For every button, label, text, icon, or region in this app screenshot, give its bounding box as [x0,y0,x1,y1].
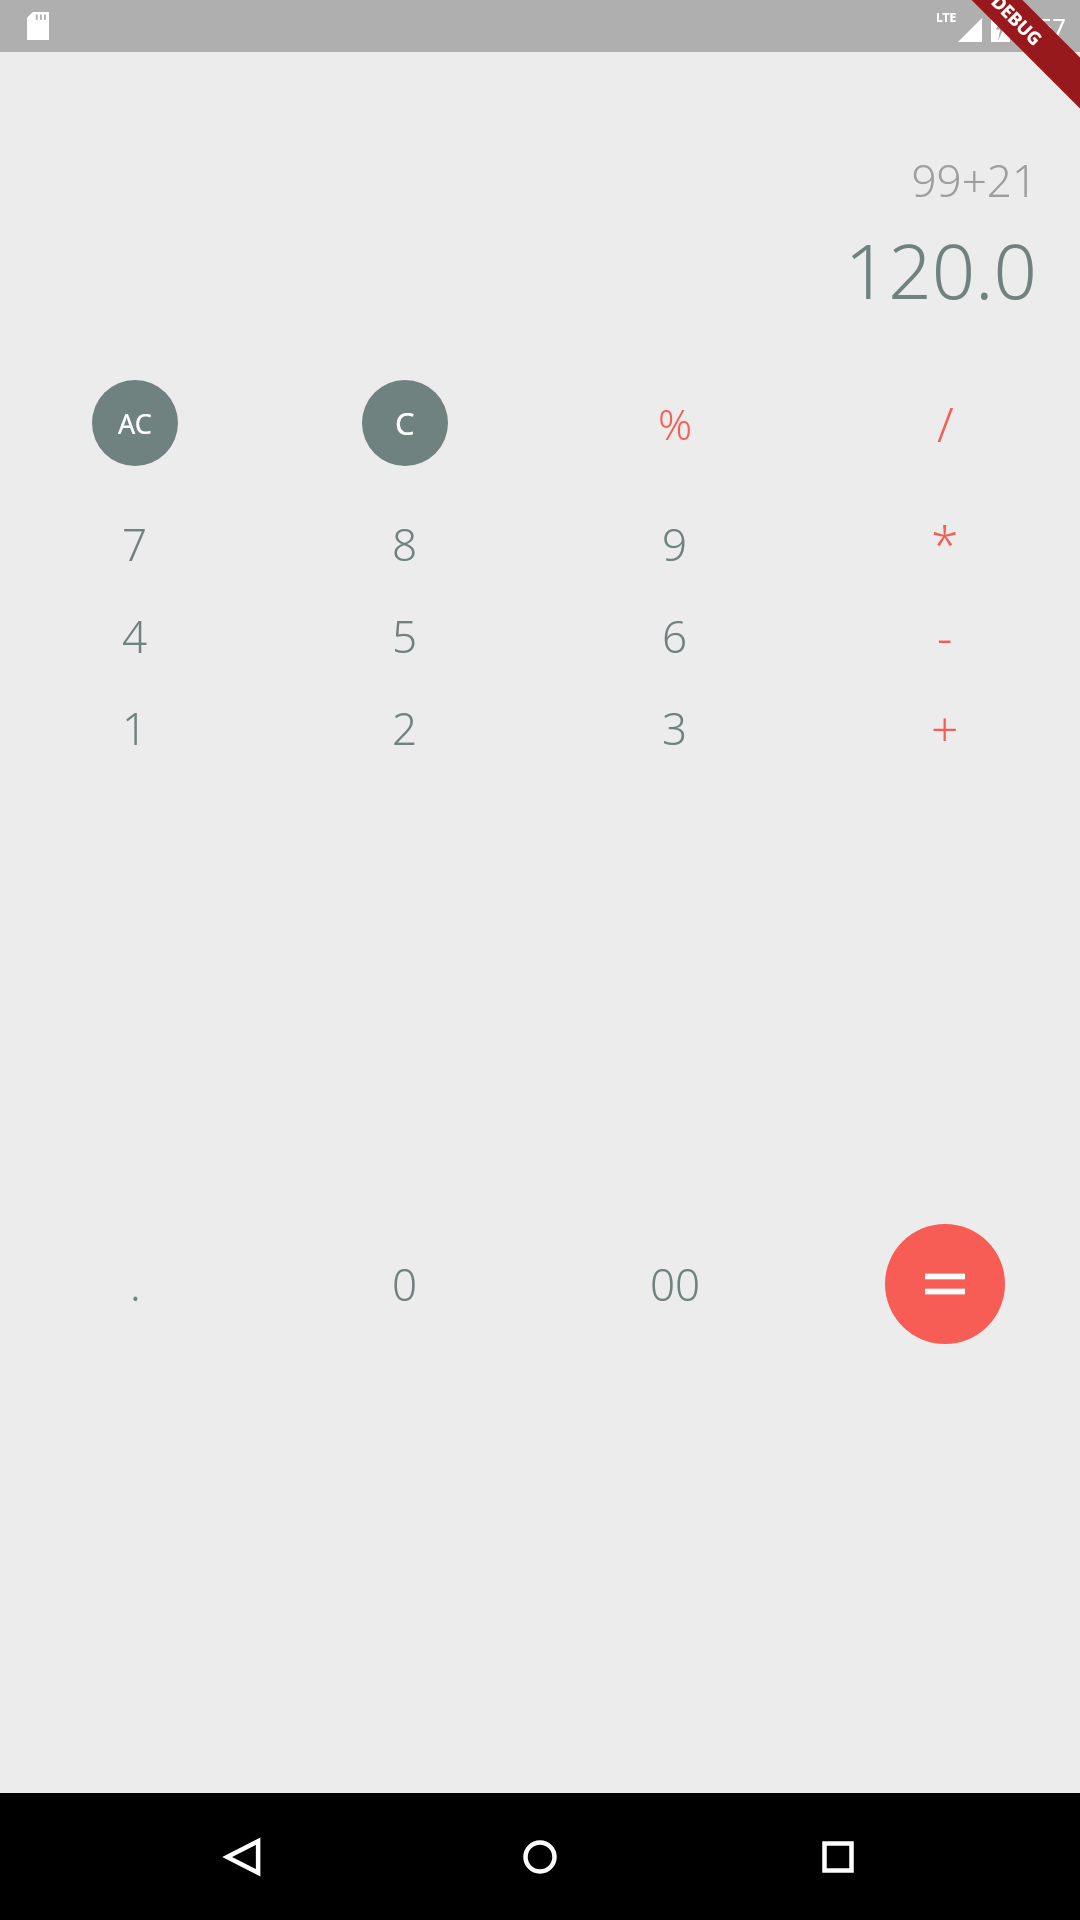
button[interactable]: 9 [615,498,735,590]
button[interactable]: * [885,498,1005,590]
button[interactable]: 00 [615,1238,735,1330]
button[interactable]: 6 [615,590,735,682]
button[interactable]: Equals [885,1224,1005,1344]
button[interactable]: / [885,377,1005,469]
staticText: 1:57 [1020,11,1066,42]
staticText: 3 [662,698,688,758]
button[interactable]: Back [188,1802,298,1912]
button[interactable]: 0 [345,1238,465,1330]
button[interactable]: 8 [345,498,465,590]
staticText: 8 [392,514,418,574]
button[interactable]: 1 [75,682,195,774]
button[interactable]: Recent apps [783,1802,893,1912]
staticText: 1 [122,698,148,758]
staticText: . [130,1254,141,1314]
staticText: LTE [936,9,957,25]
staticText: DEBUG [986,0,1047,51]
staticText: 6 [662,606,688,666]
staticText: * [931,510,959,578]
staticText: 0 [392,1254,418,1314]
staticText: 7 [122,514,148,574]
button[interactable]: 7 [75,498,195,590]
button[interactable]: 5 [345,590,465,682]
staticText: C [395,402,415,444]
button[interactable]: 4 [75,590,195,682]
button[interactable]: C [362,380,448,466]
staticText: - [937,604,953,669]
button[interactable]: + [885,682,1005,774]
staticText: 120.0 [0,218,1037,322]
button[interactable]: - [885,590,1005,682]
staticText: % [658,395,693,452]
staticText: 99+21 [0,150,1037,210]
staticText: 9 [662,514,688,574]
button[interactable]: % [615,377,735,469]
button[interactable]: AC [92,380,178,466]
staticText: 2 [392,698,418,758]
button[interactable]: . [75,1238,195,1330]
button[interactable]: 2 [345,682,465,774]
button[interactable]: Home [485,1802,595,1912]
staticText: 4 [122,606,148,666]
button[interactable]: 3 [615,682,735,774]
staticText: AC [118,405,152,442]
staticText: / [937,391,954,456]
staticText: 00 [650,1254,701,1314]
staticText: 5 [392,606,418,666]
staticText: + [931,696,959,761]
